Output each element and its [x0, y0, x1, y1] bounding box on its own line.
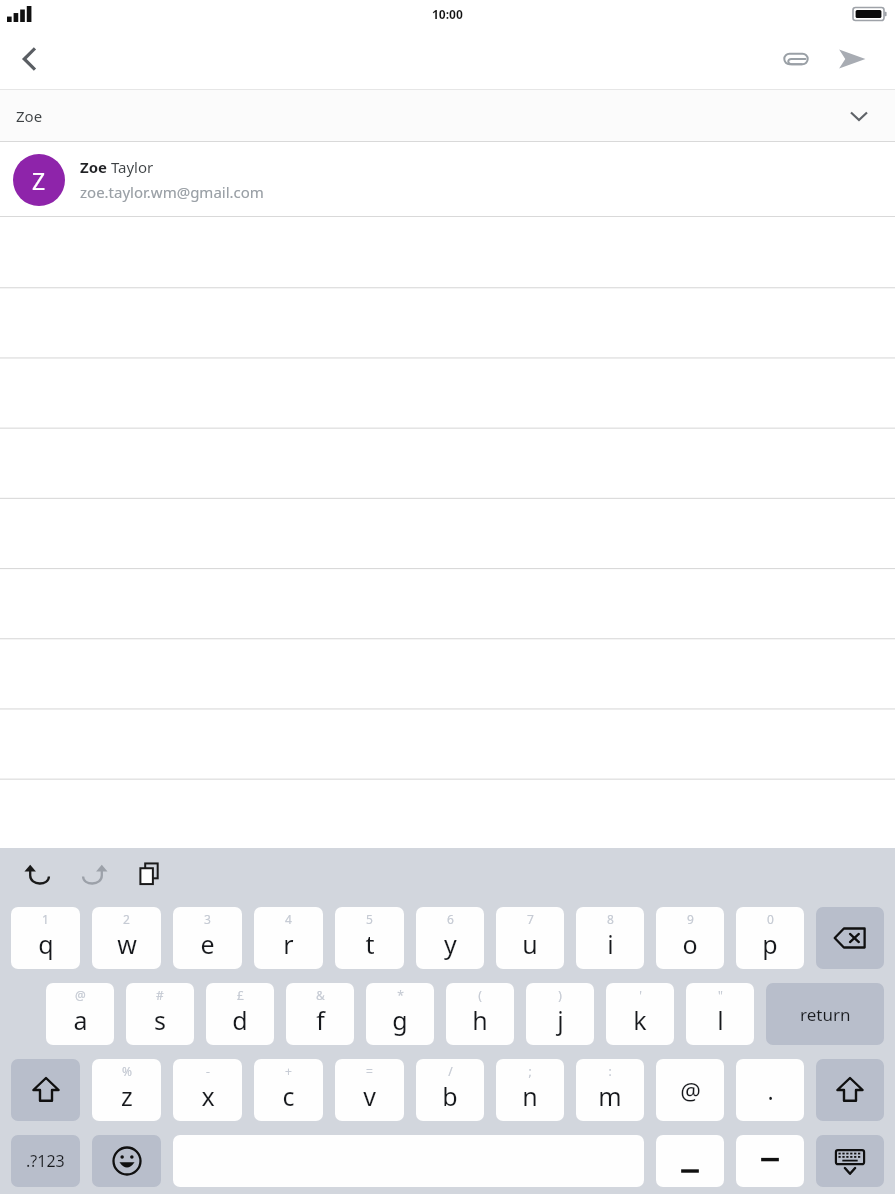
staticText: 8	[607, 911, 614, 927]
staticText: %	[122, 1063, 132, 1079]
staticText: z	[121, 1079, 133, 1113]
staticText: .?123	[26, 1150, 65, 1172]
staticText: 5	[366, 911, 373, 927]
staticText: m	[598, 1079, 622, 1113]
staticText: 4	[285, 911, 292, 927]
button[interactable]: *	[366, 983, 434, 1045]
button[interactable]: "	[686, 983, 754, 1045]
staticText: i	[607, 927, 614, 961]
button[interactable]	[736, 1135, 804, 1187]
staticText: w	[117, 927, 137, 961]
button[interactable]: 5	[335, 907, 404, 969]
staticText: t	[365, 927, 375, 961]
staticText: b	[442, 1079, 458, 1113]
button[interactable]: 3	[173, 907, 242, 969]
staticText: a	[73, 1003, 88, 1037]
staticText: "	[718, 987, 723, 1003]
staticText: )	[558, 987, 562, 1003]
staticText: k	[633, 1003, 647, 1037]
staticText: Z	[32, 165, 46, 196]
staticText: &	[316, 987, 325, 1003]
button[interactable]: '	[606, 983, 674, 1045]
staticText: j	[557, 1003, 564, 1037]
button[interactable]: Shift	[11, 1059, 80, 1121]
staticText: o	[682, 927, 698, 961]
staticText: @	[680, 1075, 701, 1106]
button[interactable]: Shift	[816, 1059, 884, 1121]
button[interactable]: %	[92, 1059, 161, 1121]
staticText: '	[639, 987, 642, 1003]
button[interactable]: Undo	[14, 850, 62, 898]
button[interactable]: )	[526, 983, 594, 1045]
button[interactable]: 6	[416, 907, 484, 969]
button[interactable]: =	[335, 1059, 404, 1121]
staticText: return	[800, 1003, 851, 1026]
button[interactable]: Paste	[126, 850, 174, 898]
button[interactable]: /	[416, 1059, 484, 1121]
button[interactable]: 2	[92, 907, 161, 969]
staticText: l	[717, 1003, 724, 1037]
staticText: #	[156, 987, 164, 1003]
staticText: e	[200, 927, 215, 961]
staticText: q	[38, 927, 54, 961]
staticText: =	[366, 1063, 373, 1079]
button[interactable]: Backspace	[816, 907, 884, 969]
staticText: g	[392, 1003, 408, 1037]
staticText: 0	[767, 911, 774, 927]
staticText: Zoe Taylor	[80, 157, 154, 177]
button[interactable]: £	[206, 983, 274, 1045]
button[interactable]: Back	[0, 29, 60, 89]
button[interactable]: #	[126, 983, 194, 1045]
button[interactable]: :	[576, 1059, 644, 1121]
button[interactable]: 0	[736, 907, 804, 969]
button[interactable]: .	[736, 1059, 804, 1121]
staticText: .	[767, 1075, 774, 1106]
button[interactable]: ;	[496, 1059, 564, 1121]
button[interactable]: 1	[11, 907, 80, 969]
staticText: d	[232, 1003, 248, 1037]
button[interactable]: Send	[825, 32, 879, 86]
staticText: f	[316, 1003, 325, 1037]
button[interactable]: .?123	[11, 1135, 80, 1187]
button[interactable]: return	[766, 983, 884, 1045]
button[interactable]: @	[46, 983, 114, 1045]
button[interactable]: +	[254, 1059, 323, 1121]
staticText: *	[397, 987, 404, 1003]
button[interactable]: @	[656, 1059, 724, 1121]
button[interactable]: Emoji	[92, 1135, 161, 1187]
staticText: c	[282, 1079, 295, 1113]
staticText: 2	[123, 911, 130, 927]
button[interactable]: -	[173, 1059, 242, 1121]
button[interactable]: 4	[254, 907, 323, 969]
staticText: @	[75, 987, 86, 1003]
staticText: x	[201, 1079, 215, 1113]
staticText: h	[472, 1003, 488, 1037]
button[interactable]	[0, 217, 895, 848]
staticText: 7	[527, 911, 534, 927]
staticText: 6	[447, 911, 454, 927]
staticText: p	[762, 927, 778, 961]
button[interactable]: 8	[576, 907, 644, 969]
button[interactable]: Expand recipients	[839, 96, 879, 136]
staticText: /	[448, 1063, 453, 1079]
staticText: (	[478, 987, 482, 1003]
staticText: :	[608, 1063, 612, 1079]
button[interactable]	[656, 1135, 724, 1187]
button[interactable]: Z	[0, 142, 895, 217]
button[interactable]: Hide keyboard	[816, 1135, 884, 1187]
button[interactable]: Zoe	[0, 90, 895, 142]
staticText: s	[154, 1003, 166, 1037]
staticText: r	[283, 927, 294, 961]
button[interactable]: 9	[656, 907, 724, 969]
button[interactable]: &	[286, 983, 354, 1045]
staticText: u	[522, 927, 538, 961]
staticText: +	[285, 1063, 292, 1079]
button[interactable]: (	[446, 983, 514, 1045]
button[interactable]: 7	[496, 907, 564, 969]
staticText: -	[206, 1063, 210, 1079]
staticText: v	[363, 1079, 376, 1113]
button[interactable]: Attach file	[769, 32, 823, 86]
button[interactable]: Redo	[70, 850, 118, 898]
staticText: 3	[204, 911, 211, 927]
